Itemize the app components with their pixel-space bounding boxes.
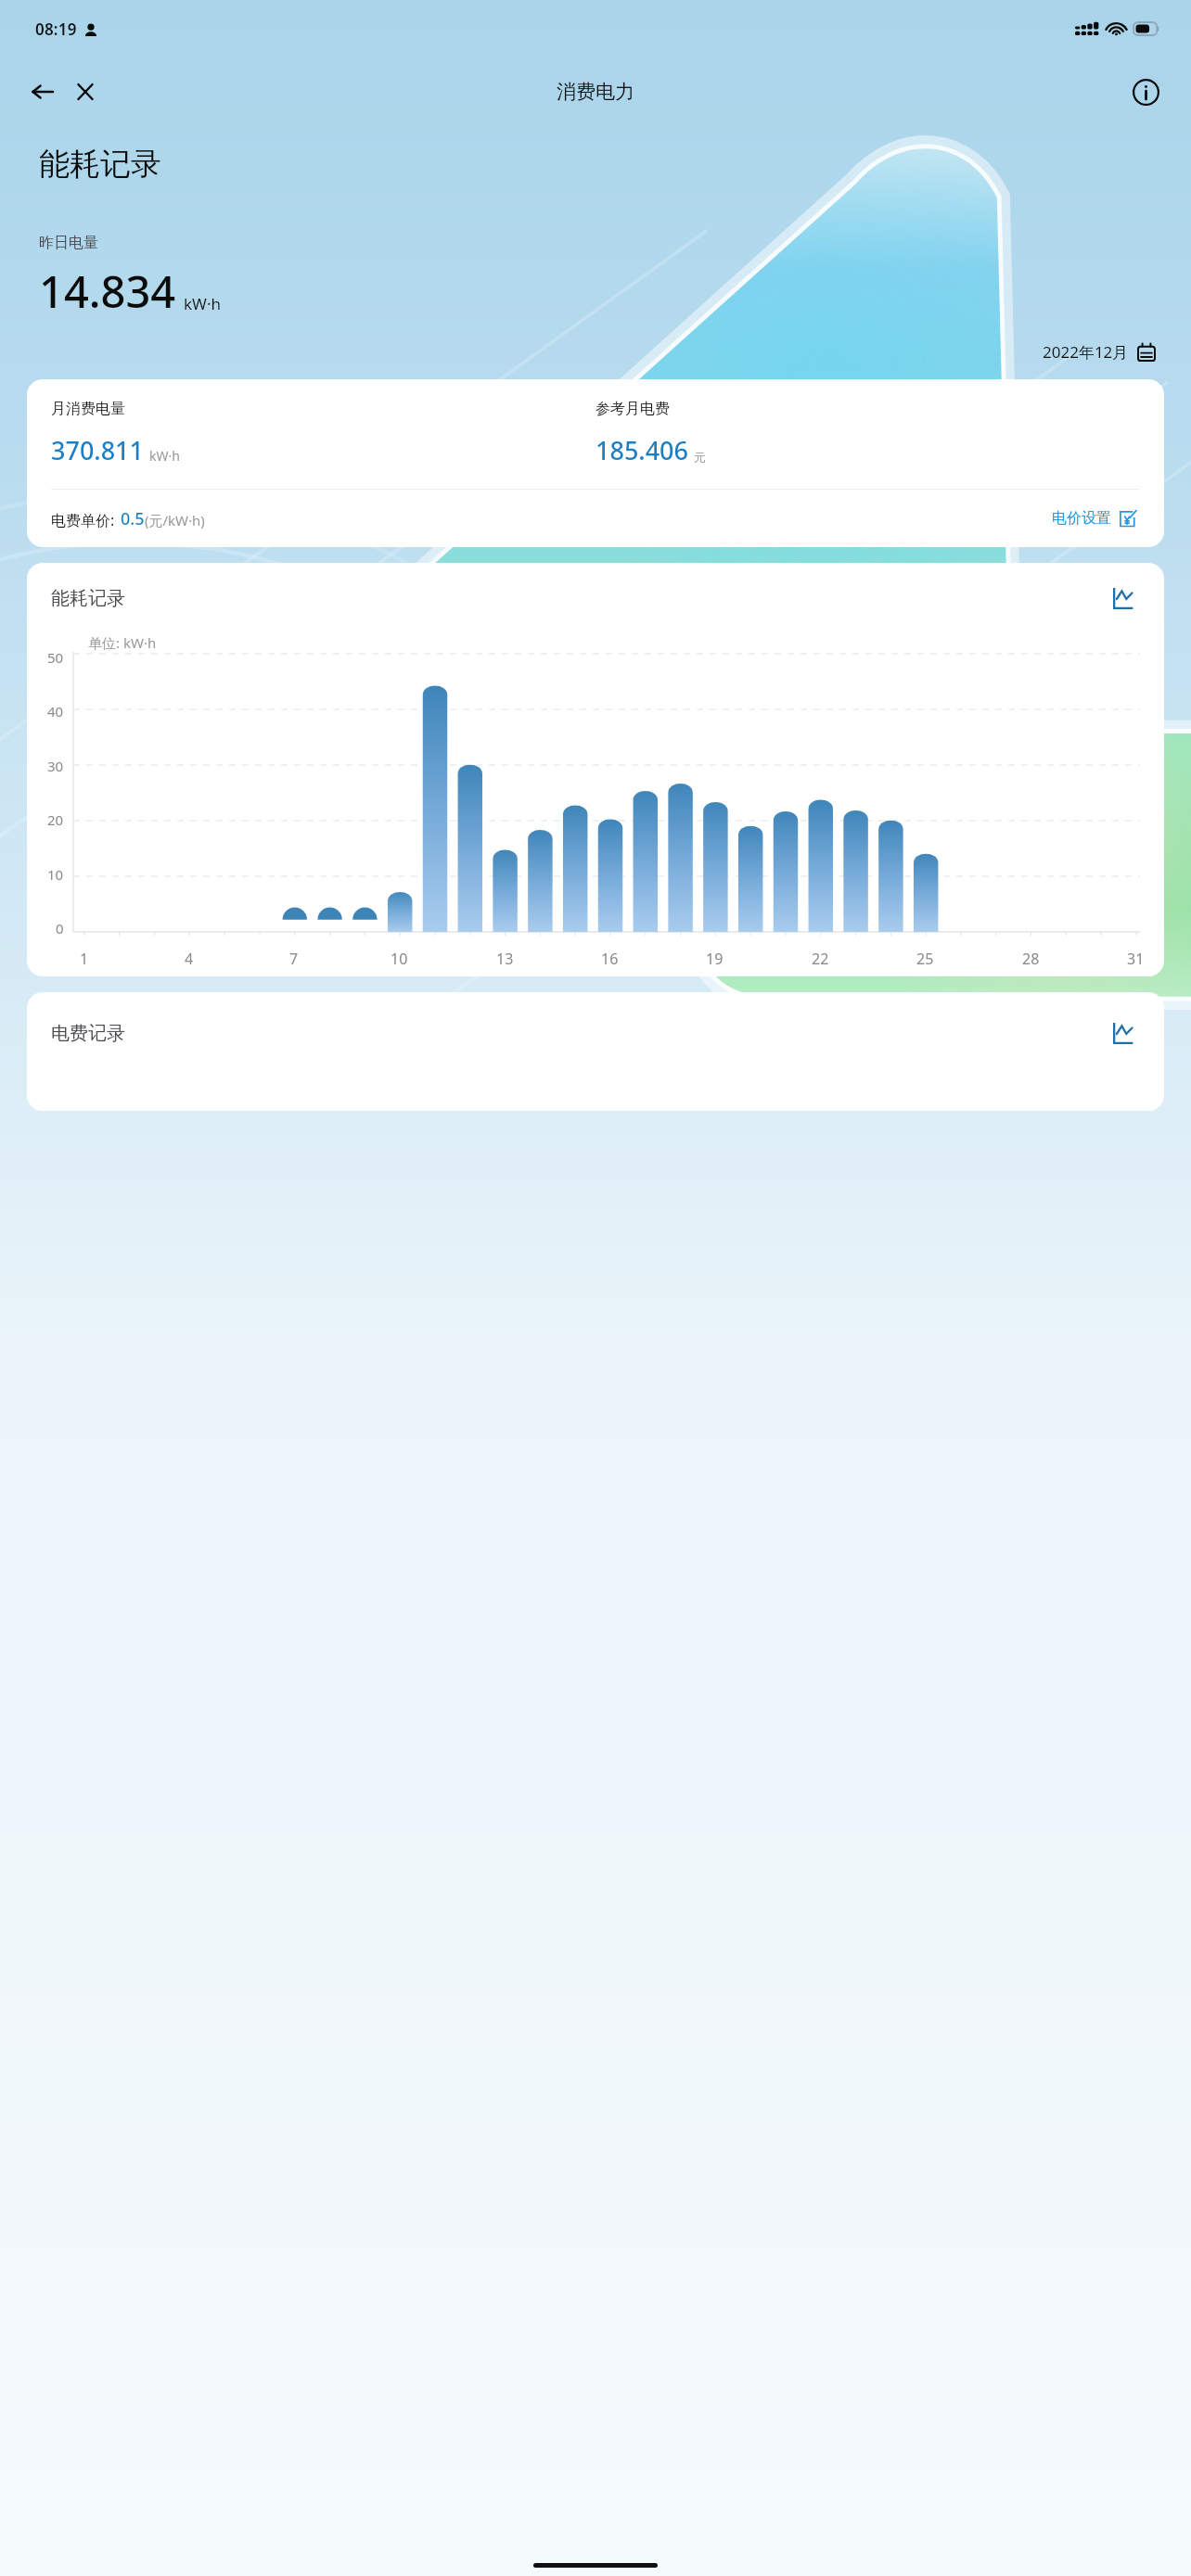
staticText: 13 — [496, 949, 514, 969]
staticText: 14.834 — [39, 261, 176, 321]
staticText: 0.5 — [121, 507, 145, 530]
staticText: 50 — [47, 648, 64, 667]
staticText: 电价设置 — [1052, 509, 1111, 528]
button[interactable]: View fee chart — [1107, 1016, 1140, 1050]
staticText: 元 — [694, 450, 706, 465]
staticText: 消费电力 — [557, 80, 634, 104]
staticText: 电费单价: — [51, 510, 115, 530]
staticText: 1 — [80, 949, 89, 969]
staticText: kW·h — [184, 293, 221, 314]
staticText: 能耗记录 — [39, 145, 161, 184]
staticText: 参考月电费 — [595, 400, 670, 418]
staticText: 31 — [1127, 949, 1145, 969]
button[interactable]: Close — [65, 71, 106, 112]
staticText: 7 — [289, 949, 299, 969]
staticText: 08:19 — [35, 19, 77, 40]
button[interactable]: 月消费电量 — [27, 379, 1164, 547]
staticText: 25 — [916, 949, 934, 969]
staticText: (元/kW·h) — [145, 511, 205, 529]
staticText: 0 — [56, 919, 64, 937]
button[interactable]: 2022年12月 — [1037, 336, 1161, 368]
button[interactable]: 电价设置 — [1048, 505, 1140, 531]
button[interactable]: View energy chart — [1107, 581, 1140, 615]
staticText: 370.811 — [51, 433, 145, 467]
staticText: 10 — [391, 949, 408, 969]
staticText: kW·h — [149, 447, 180, 465]
staticText: 40 — [47, 702, 64, 721]
staticText: 28 — [1022, 949, 1040, 969]
button[interactable]: Information — [1124, 70, 1167, 113]
staticText: 2022年12月 — [1043, 341, 1129, 363]
staticText: 能耗记录 — [51, 587, 125, 610]
staticText: 10 — [47, 865, 64, 884]
staticText: 19 — [706, 949, 724, 969]
staticText: 20 — [47, 810, 64, 829]
staticText: 22 — [812, 949, 829, 969]
staticText: 月消费电量 — [51, 400, 125, 418]
staticText: 16 — [601, 949, 619, 969]
staticText: 单位: kW·h — [88, 633, 157, 652]
staticText: 30 — [47, 757, 64, 775]
staticText: 185.406 — [595, 433, 689, 467]
staticText: 电费记录 — [51, 1022, 125, 1045]
staticText: 4 — [185, 949, 194, 969]
button[interactable]: Back — [22, 71, 63, 112]
staticText: 昨日电量 — [39, 234, 98, 252]
